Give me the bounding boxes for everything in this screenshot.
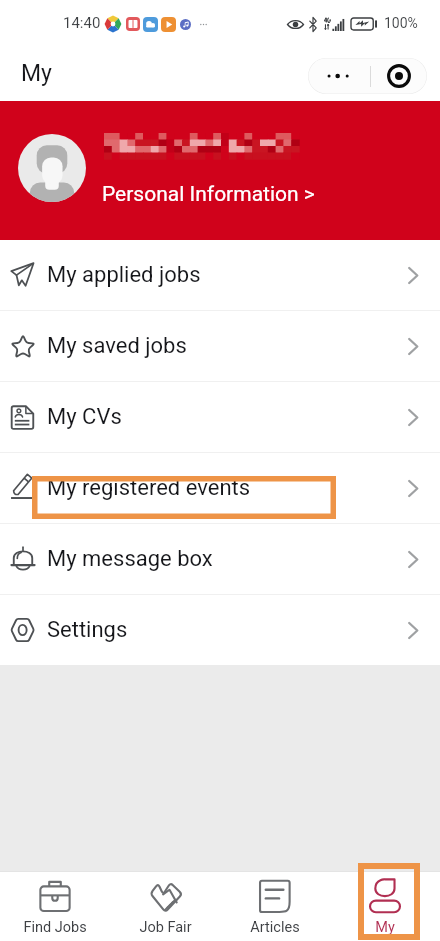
button[interactable]: My applied jobs (0, 240, 440, 310)
staticText: Personal Information > (102, 182, 315, 207)
button[interactable]: Personal Information > (0, 101, 440, 240)
staticText: Settings (47, 617, 128, 643)
button[interactable]: Find Jobs (0, 872, 110, 941)
staticText: 100% (384, 15, 418, 31)
button[interactable]: My CVs (0, 382, 440, 452)
staticText: My (375, 919, 395, 936)
button[interactable]: My saved jobs (0, 311, 440, 381)
staticText: 14:40 (63, 14, 101, 32)
staticText: My saved jobs (47, 333, 187, 359)
button[interactable]: My (330, 872, 440, 941)
staticText: My (21, 60, 52, 87)
staticText: My message box (47, 546, 213, 572)
button[interactable]: Close mini program (371, 58, 427, 94)
staticText: My applied jobs (47, 262, 201, 288)
button[interactable]: Articles (220, 872, 330, 941)
staticText: My CVs (47, 404, 122, 430)
button[interactable]: My message box (0, 524, 440, 594)
staticText: Find Jobs (23, 919, 87, 936)
button[interactable]: Settings (0, 595, 440, 665)
button[interactable]: My registered events (0, 453, 440, 523)
staticText: My registered events (47, 475, 251, 501)
staticText: Articles (250, 919, 300, 936)
button[interactable]: More options (308, 58, 370, 94)
button[interactable]: Job Fair (110, 872, 220, 941)
staticText: Job Fair (139, 919, 192, 936)
